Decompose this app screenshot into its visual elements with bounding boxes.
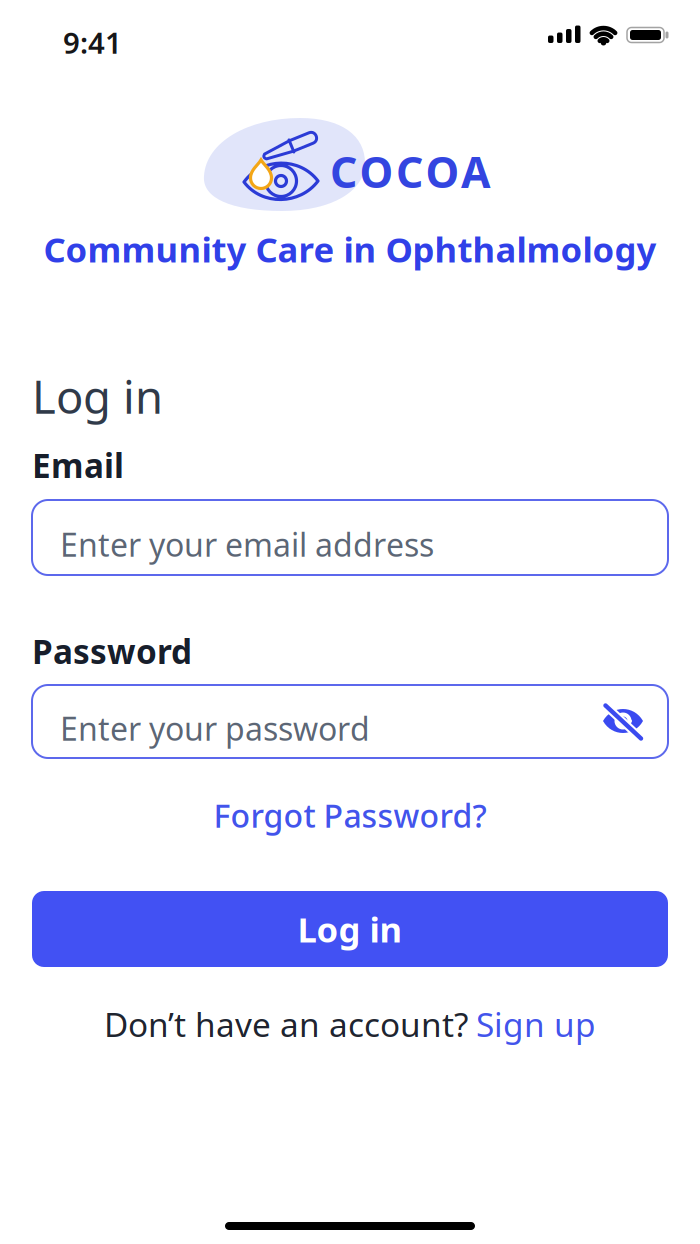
staticText: Log in [32,366,163,426]
staticText: Enter your email address [60,523,434,565]
staticText: Community Care in Ophthalmology [43,226,656,272]
staticText: Email [32,443,124,487]
staticText: Sign up [476,1002,596,1046]
staticText: Forgot Password? [213,794,486,836]
staticText: Enter your password [60,707,370,749]
staticText: Don’t have an account? [104,1002,468,1046]
staticText: COCOA [330,143,491,200]
button[interactable]: Log in [32,891,668,967]
button[interactable]: Sign up [476,1002,596,1046]
button[interactable]: Forgot Password? [213,794,486,836]
button[interactable] [595,693,651,749]
staticText: 9:41 [63,23,122,62]
button[interactable]: Enter your email address [32,500,668,575]
button[interactable]: Enter your password [32,685,668,758]
staticText: Password [32,629,192,673]
staticText: Log in [297,906,402,952]
